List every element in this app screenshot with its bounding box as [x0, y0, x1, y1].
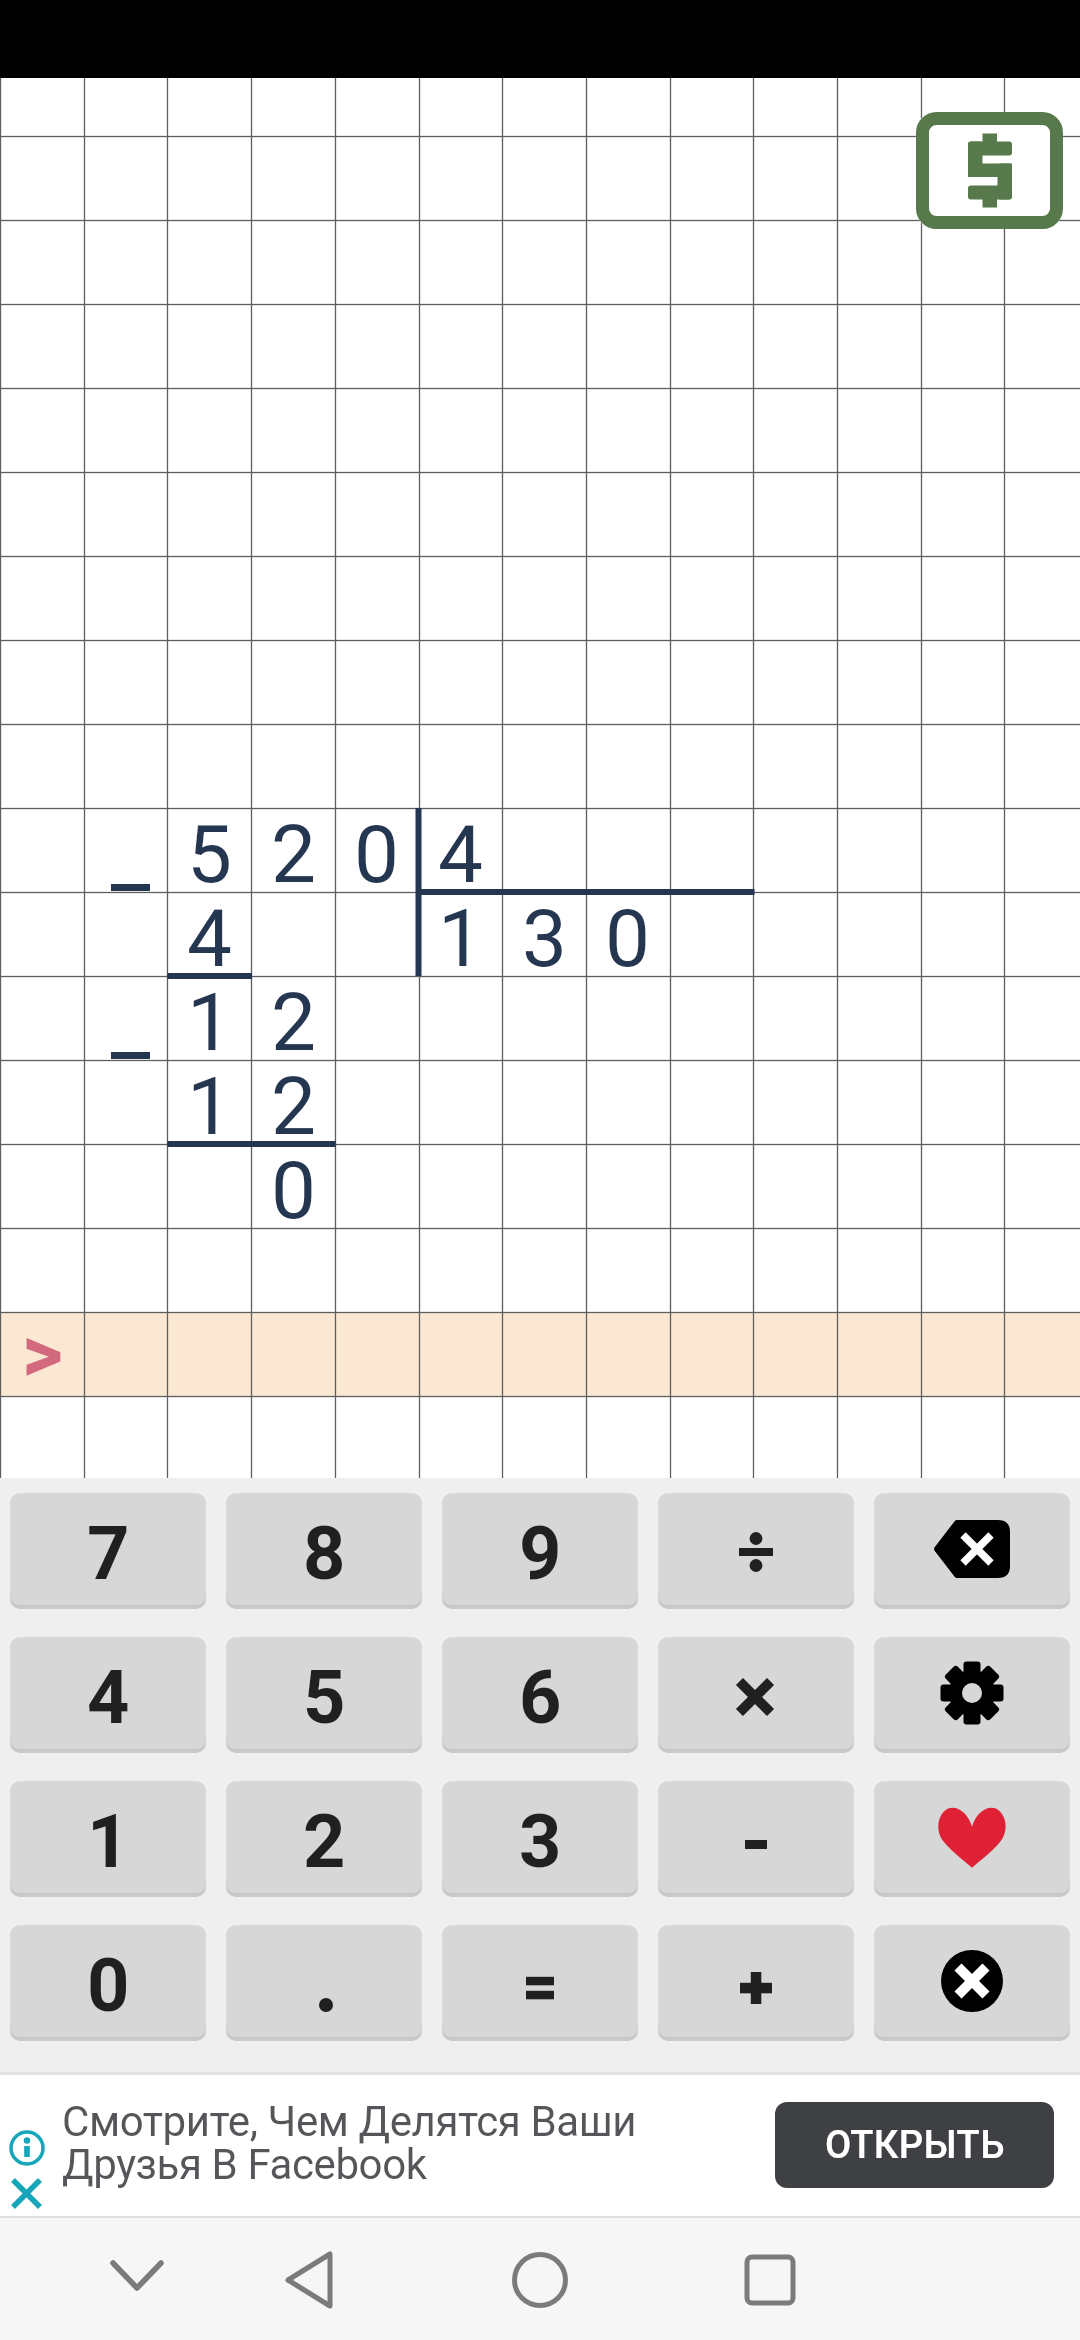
staticText: ОТКРЫТЬ: [825, 2123, 1005, 2168]
button[interactable]: [916, 112, 1063, 229]
button[interactable]: [658, 1925, 854, 2037]
staticText: 1: [87, 1798, 130, 1885]
staticText: Друзья В Facebook: [62, 2140, 427, 2189]
staticText: 5: [303, 1654, 346, 1741]
staticText: 9: [519, 1510, 562, 1597]
button[interactable]: [718, 2228, 822, 2332]
button[interactable]: [488, 2228, 592, 2332]
staticText: 2: [271, 1060, 316, 1144]
button[interactable]: 5: [226, 1637, 422, 1749]
button[interactable]: 9: [442, 1493, 638, 1605]
button[interactable]: [658, 1781, 854, 1893]
button[interactable]: 3: [442, 1781, 638, 1893]
staticText: 0: [271, 1144, 316, 1228]
button[interactable]: 6: [442, 1637, 638, 1749]
button[interactable]: 4: [10, 1637, 206, 1749]
staticText: 5: [187, 808, 232, 892]
staticText: 3: [519, 1798, 562, 1885]
button[interactable]: 8: [226, 1493, 422, 1605]
button[interactable]: 0: [10, 1925, 206, 2037]
staticText: 1: [187, 1060, 232, 1144]
button[interactable]: ОТКРЫТЬ: [775, 2102, 1054, 2188]
staticText: 8: [303, 1510, 346, 1597]
button[interactable]: [8, 2174, 48, 2214]
staticText: 2: [271, 976, 316, 1060]
staticText: 1: [438, 892, 483, 976]
button[interactable]: [658, 1637, 854, 1749]
button[interactable]: [874, 1925, 1070, 2037]
button[interactable]: [874, 1781, 1070, 1893]
button[interactable]: [85, 2228, 189, 2332]
staticText: 0: [354, 808, 399, 892]
button[interactable]: [257, 2228, 361, 2332]
staticText: 1: [187, 976, 232, 1060]
staticText: >: [22, 1308, 63, 1392]
staticText: 2: [303, 1798, 346, 1885]
button[interactable]: 1: [10, 1781, 206, 1893]
staticText: Смотрите, Чем Делятся Ваши: [62, 2097, 637, 2146]
staticText: 4: [438, 808, 483, 892]
staticText: 3: [522, 892, 567, 976]
button[interactable]: [226, 1925, 422, 2037]
button[interactable]: [874, 1493, 1070, 1605]
staticText: 2: [271, 808, 316, 892]
button[interactable]: 2: [226, 1781, 422, 1893]
staticText: 0: [605, 892, 650, 976]
button[interactable]: [8, 2128, 48, 2168]
staticText: 6: [519, 1654, 562, 1741]
button[interactable]: [442, 1925, 638, 2037]
staticText: 4: [87, 1654, 130, 1741]
button[interactable]: [874, 1637, 1070, 1749]
staticText: 0: [87, 1942, 130, 2029]
staticText: 4: [187, 892, 232, 976]
button[interactable]: [658, 1493, 854, 1605]
staticText: 7: [87, 1510, 130, 1597]
button[interactable]: 7: [10, 1493, 206, 1605]
